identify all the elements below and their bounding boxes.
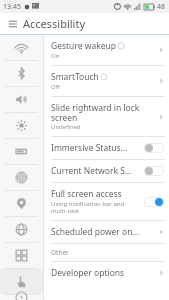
staticText: On	[51, 52, 60, 60]
button[interactable]: Current Network S…	[44, 160, 169, 182]
button[interactable]: Accessibility	[0, 269, 43, 294]
staticText: Scheduled power on…	[51, 226, 140, 238]
staticText: Off	[51, 83, 60, 91]
staticText: Accessibility	[23, 16, 86, 31]
staticText: Gesture wakeup	[51, 40, 116, 52]
button[interactable]: About	[0, 295, 43, 300]
staticText: Immersive Status…	[51, 142, 128, 154]
staticText: Slide rightward in lock screen	[51, 102, 154, 123]
button[interactable]: SmartTouch	[44, 66, 169, 96]
staticText: Undefined	[51, 123, 81, 131]
button[interactable]: Battery	[0, 139, 43, 164]
button[interactable]: Off	[144, 166, 164, 176]
staticText: 48	[157, 2, 166, 12]
button[interactable]: Display	[0, 113, 43, 138]
staticText: Using notification bar and multi-task	[51, 200, 141, 215]
button[interactable]: Location	[0, 191, 43, 216]
staticText: Developer options	[51, 267, 125, 279]
staticText: Full screen access	[51, 188, 122, 200]
button[interactable]: Full screen access	[44, 183, 169, 220]
button[interactable]: Slide rightward in lock screen	[44, 97, 169, 136]
button[interactable]: Scheduled power on…	[44, 221, 169, 243]
staticText: 13:45	[3, 2, 21, 12]
button[interactable]: Apps	[0, 243, 43, 268]
button[interactable]: Fingerprint	[0, 165, 43, 190]
button[interactable]: Sound	[0, 87, 43, 112]
staticText: Other	[51, 248, 69, 257]
button[interactable]: Gesture wakeup	[44, 35, 169, 65]
button[interactable]: Immersive Status…	[44, 137, 169, 159]
staticText: SmartTouch	[51, 71, 99, 83]
button[interactable]: On	[144, 197, 164, 207]
button[interactable]: Off	[144, 143, 164, 153]
staticText: Current Network S…	[51, 165, 132, 177]
button[interactable]: Menu	[6, 17, 20, 31]
button[interactable]: Bluetooth	[0, 61, 43, 86]
button[interactable]: Wi-Fi	[0, 35, 43, 60]
button[interactable]: Language	[0, 217, 43, 242]
button[interactable]: Developer options	[44, 262, 169, 284]
